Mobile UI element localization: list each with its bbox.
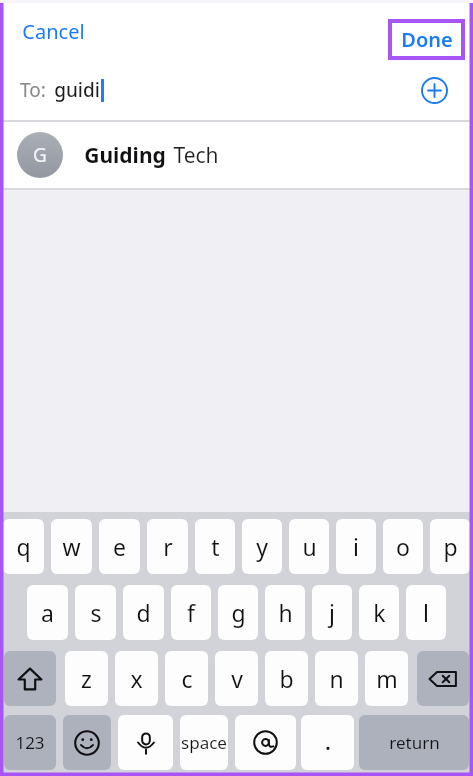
button[interactable]: Dictation: [118, 715, 173, 770]
staticText: l: [423, 597, 429, 628]
button[interactable]: g: [218, 585, 258, 640]
staticText: r: [163, 531, 173, 562]
staticText: w: [62, 531, 81, 562]
button[interactable]: l: [406, 585, 446, 640]
button[interactable]: d: [123, 585, 164, 640]
staticText: m: [376, 663, 398, 694]
staticText: z: [81, 663, 92, 694]
button[interactable]: w: [51, 519, 92, 574]
staticText: q: [16, 531, 31, 562]
button[interactable]: j: [312, 585, 352, 640]
staticText: To:: [20, 77, 46, 103]
button[interactable]: z: [65, 651, 108, 706]
button[interactable]: b: [265, 651, 308, 706]
staticText: Guiding: [84, 141, 166, 170]
button[interactable]: Cancel: [18, 14, 89, 49]
button[interactable]: Backspace: [417, 651, 469, 706]
button[interactable]: q: [3, 519, 44, 574]
staticText: 123: [15, 731, 45, 754]
staticText: g: [231, 597, 246, 628]
staticText: a: [41, 597, 54, 628]
staticText: return: [389, 731, 440, 754]
staticText: s: [90, 597, 102, 628]
button[interactable]: space: [180, 715, 228, 770]
staticText: y: [256, 531, 268, 562]
button[interactable]: e: [99, 519, 140, 574]
button[interactable]: s: [75, 585, 116, 640]
staticText: d: [136, 597, 151, 628]
staticText: v: [231, 663, 243, 694]
button[interactable]: c: [165, 651, 208, 706]
button[interactable]: r: [147, 519, 188, 574]
staticText: G: [33, 142, 47, 168]
staticText: .: [325, 730, 331, 756]
staticText: j: [329, 597, 335, 628]
staticText: space: [181, 731, 227, 754]
staticText: guidi: [54, 77, 100, 103]
staticText: h: [278, 597, 293, 628]
button[interactable]: At sign: [235, 715, 296, 770]
staticText: Tech: [173, 141, 219, 170]
button[interactable]: Add contact: [417, 73, 451, 107]
staticText: k: [373, 597, 386, 628]
button[interactable]: t: [195, 519, 235, 574]
button[interactable]: a: [27, 585, 68, 640]
button[interactable]: x: [115, 651, 158, 706]
staticText: Done: [401, 26, 453, 53]
staticText: e: [113, 531, 126, 562]
button[interactable]: Emoji: [63, 715, 111, 770]
button[interactable]: Period: [301, 715, 354, 770]
button[interactable]: Shift: [4, 651, 56, 706]
button[interactable]: i: [336, 519, 376, 574]
staticText: f: [187, 597, 195, 628]
button[interactable]: o: [383, 519, 423, 574]
button[interactable]: k: [359, 585, 399, 640]
staticText: t: [211, 531, 220, 562]
button[interactable]: Numbers: [4, 715, 56, 770]
button[interactable]: h: [265, 585, 305, 640]
staticText: x: [130, 663, 143, 694]
button[interactable]: v: [215, 651, 258, 706]
button[interactable]: Done: [392, 23, 461, 56]
button[interactable]: return: [359, 715, 469, 770]
staticText: b: [279, 663, 294, 694]
staticText: c: [181, 663, 193, 694]
staticText: o: [396, 531, 410, 562]
staticText: n: [329, 663, 344, 694]
button[interactable]: m: [365, 651, 408, 706]
button[interactable]: n: [315, 651, 358, 706]
button[interactable]: y: [242, 519, 282, 574]
button[interactable]: p: [430, 519, 470, 574]
staticText: i: [353, 531, 359, 562]
button[interactable]: f: [171, 585, 211, 640]
staticText: p: [443, 531, 458, 562]
staticText: Cancel: [22, 18, 85, 45]
staticText: u: [302, 531, 317, 562]
button[interactable]: u: [289, 519, 329, 574]
button[interactable]: G: [0, 122, 473, 188]
